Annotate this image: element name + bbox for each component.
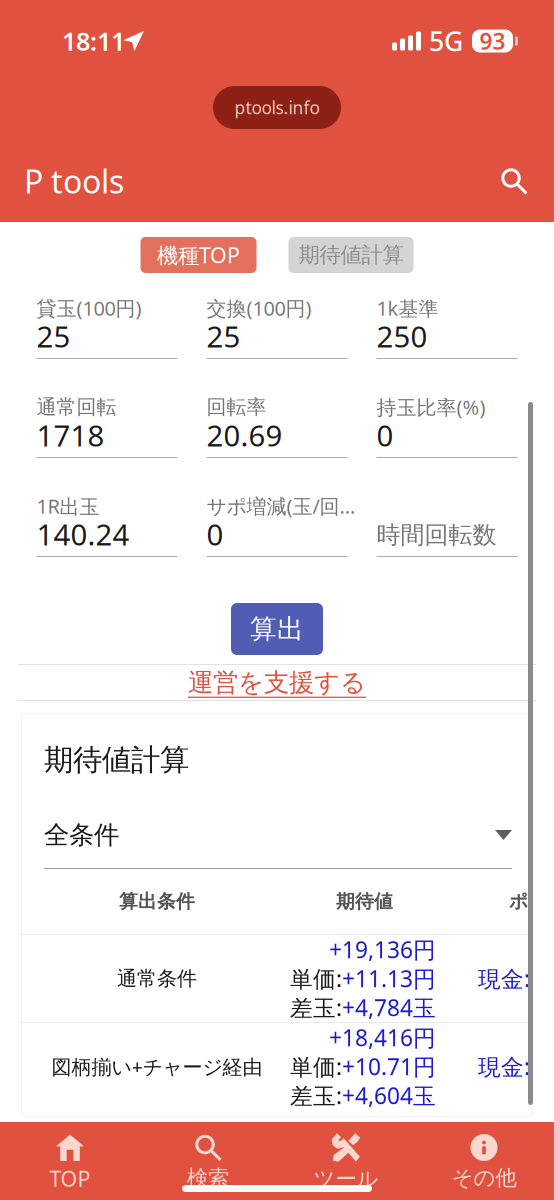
staticText: 0 <box>206 514 223 553</box>
staticText: 期待値 <box>336 890 393 913</box>
staticText: 運営を支援する <box>188 667 366 698</box>
staticText: 時間回転数 <box>376 520 496 550</box>
staticText: +4,784玉 <box>342 992 436 1022</box>
staticText: 検索 <box>187 1165 229 1191</box>
staticText: 93 <box>479 26 505 56</box>
staticText: 通常条件 <box>117 966 197 991</box>
staticText: 算出 <box>250 613 304 645</box>
staticText: 1718 <box>36 415 104 454</box>
staticText: 単価: <box>290 963 342 993</box>
staticText: ptools.info <box>234 96 319 119</box>
button[interactable]: 運営を支援する <box>188 665 366 700</box>
staticText: +10.71円 <box>342 1051 436 1081</box>
staticText: 5G <box>429 23 463 59</box>
staticText: 25 <box>36 316 70 355</box>
staticText: 20.69 <box>206 415 282 454</box>
staticText: 140.24 <box>36 514 129 553</box>
staticText: 期待値計算 <box>44 742 189 778</box>
staticText: 25 <box>206 316 240 355</box>
staticText: 期待値計算 <box>298 242 403 268</box>
staticText: ツール <box>313 1166 378 1192</box>
staticText: P tools <box>24 160 124 202</box>
staticText: サポ増減(玉/回… <box>206 493 355 519</box>
staticText: 回転率 <box>206 395 266 419</box>
staticText: TOP <box>49 1164 90 1193</box>
staticText: +4,604玉 <box>342 1080 436 1110</box>
staticText: +11.13円 <box>342 963 436 993</box>
staticText: 現金:1 <box>478 963 543 993</box>
staticText: 算出条件 <box>119 890 195 913</box>
staticText: ポイント <box>509 890 554 913</box>
button[interactable]: ptools.info <box>213 86 341 129</box>
staticText: 交換(100円) <box>206 295 311 321</box>
staticText: 0 <box>376 415 393 454</box>
staticText: 1k基準 <box>376 295 438 321</box>
staticText: 通常回転 <box>36 395 116 419</box>
button[interactable]: 検索 <box>139 1122 277 1200</box>
staticText: +18,416円 <box>329 1022 436 1052</box>
staticText: その他 <box>451 1165 516 1191</box>
staticText: 現金:1 <box>478 1051 543 1081</box>
staticText: 図柄揃い+チャージ経由 <box>51 1053 262 1080</box>
staticText: 貸玉(100円) <box>36 295 141 321</box>
button[interactable]: その他 <box>415 1122 553 1200</box>
button[interactable]: ツール <box>277 1122 415 1200</box>
button[interactable]: 算出 <box>231 603 323 655</box>
staticText: 機種TOP <box>157 241 240 269</box>
button[interactable]: TOP <box>1 1122 139 1200</box>
button[interactable]: Search <box>492 159 536 203</box>
staticText: 持玉比率(%) <box>376 394 485 420</box>
button[interactable]: 期待値計算 <box>288 237 413 273</box>
staticText: 差玉: <box>290 992 342 1022</box>
button[interactable]: 機種TOP <box>140 237 256 273</box>
staticText: 全条件 <box>44 819 119 850</box>
staticText: 18:11 <box>62 24 125 58</box>
staticText: 250 <box>376 316 427 355</box>
staticText: 単価: <box>290 1051 342 1081</box>
staticText: +19,136円 <box>329 934 436 964</box>
staticText: 差玉: <box>290 1080 342 1110</box>
staticText: 1R出玉 <box>36 493 99 519</box>
